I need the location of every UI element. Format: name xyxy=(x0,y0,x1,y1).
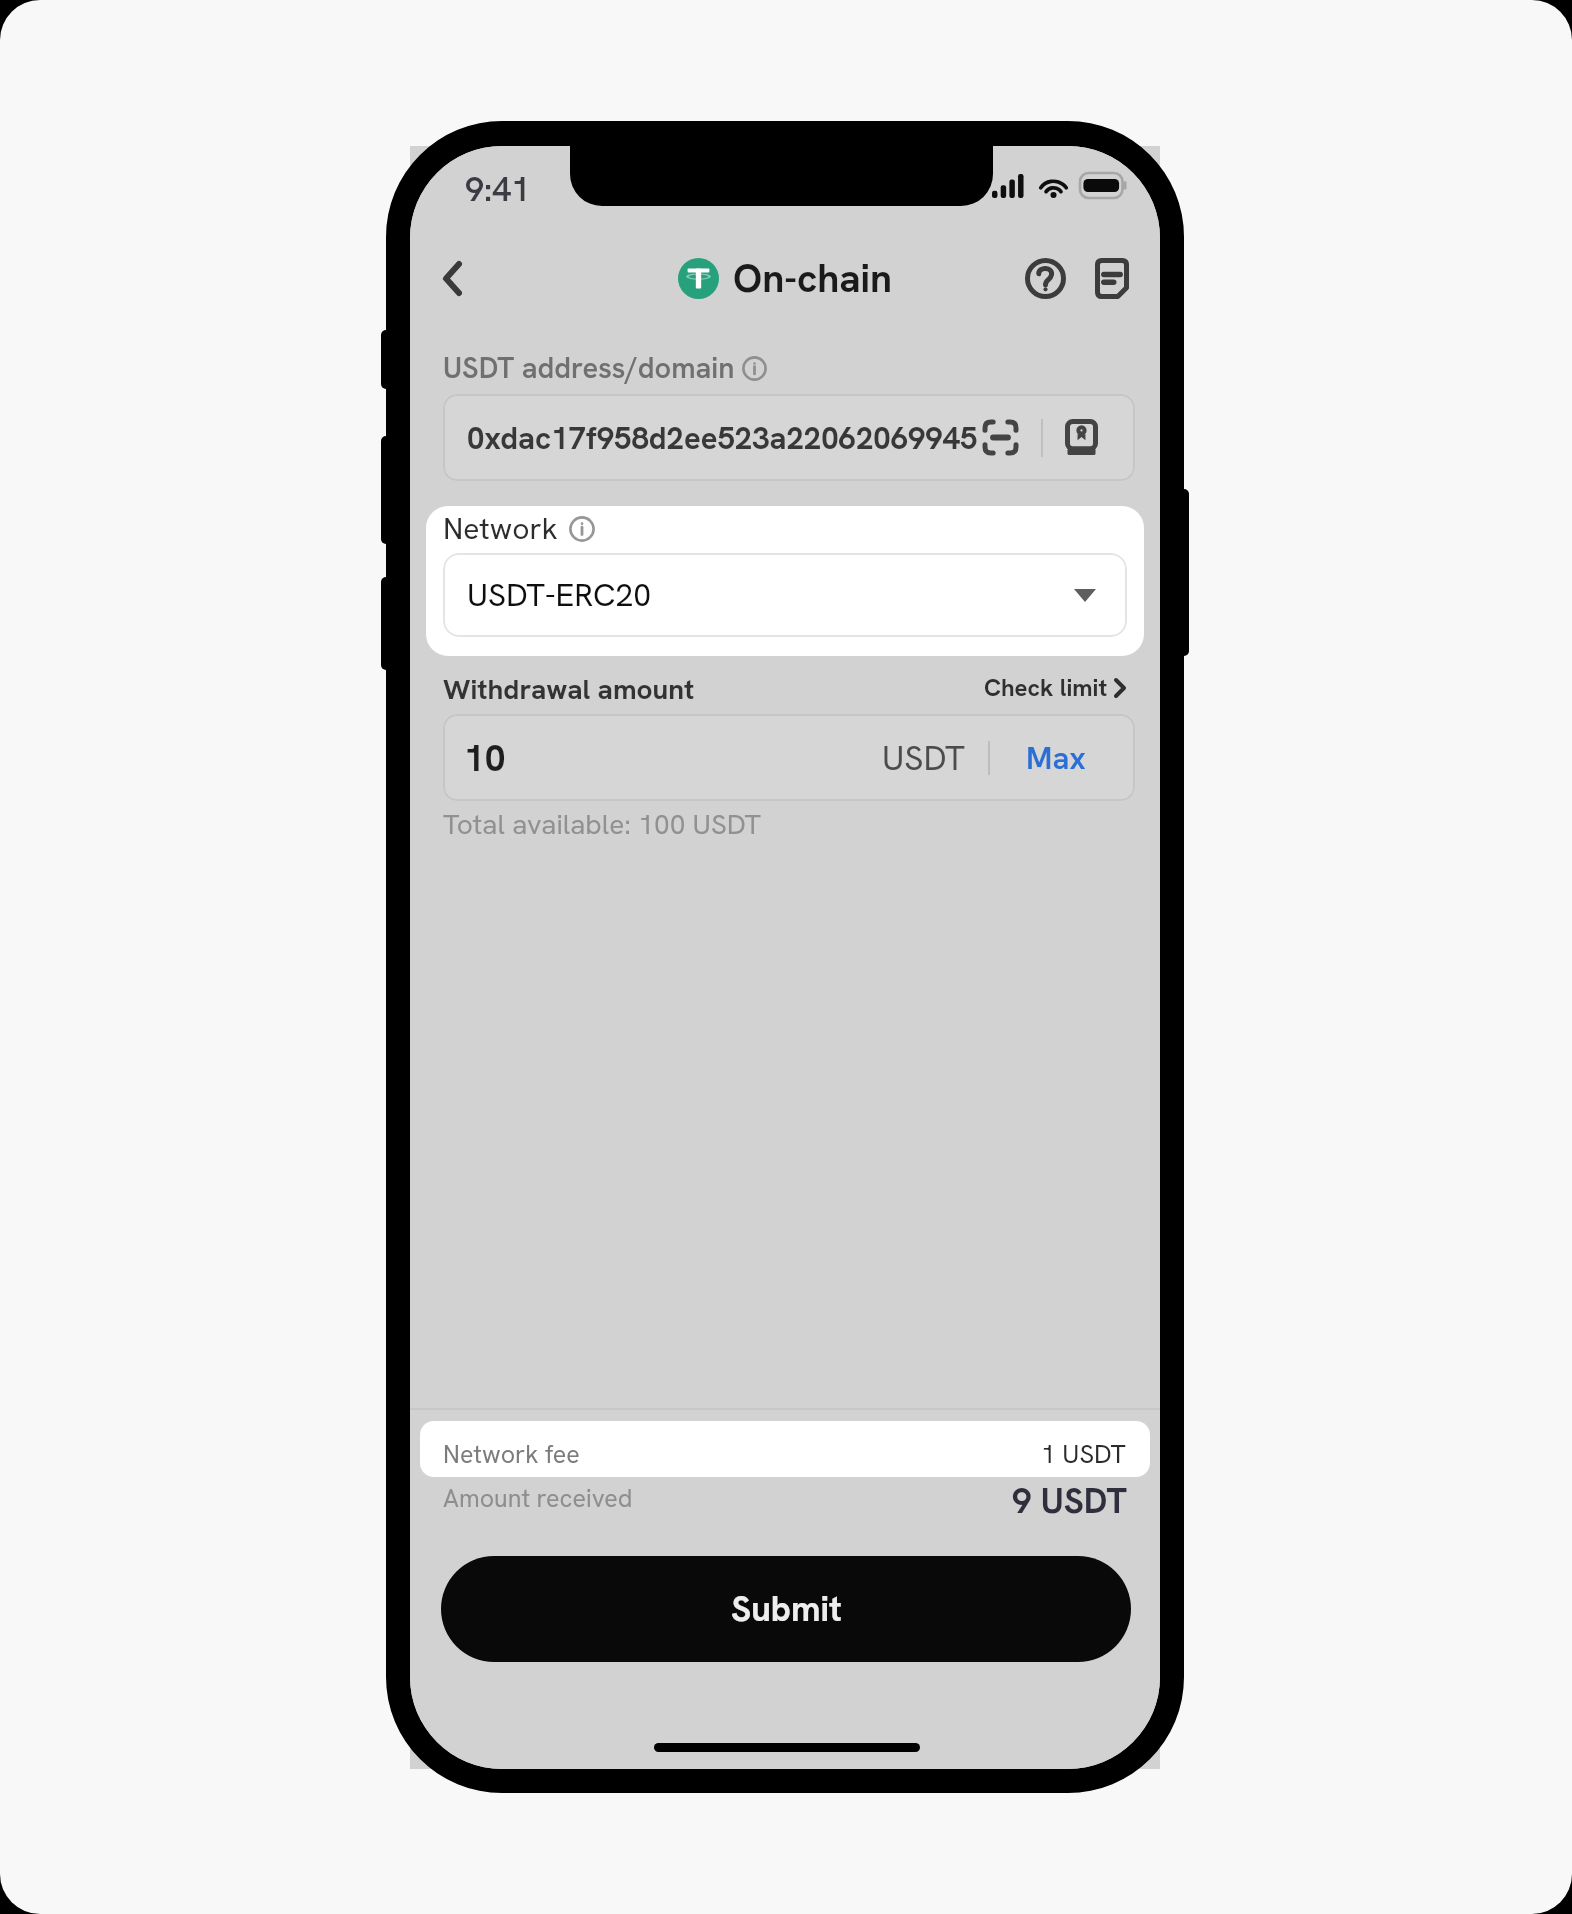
staticText: 9:41 xyxy=(465,167,531,211)
staticText: Max xyxy=(1026,738,1086,778)
button[interactable]: USDT-ERC20 xyxy=(443,553,1127,637)
staticText: Total available: 100 USDT xyxy=(443,806,761,842)
staticText: USDT-ERC20 xyxy=(467,574,652,616)
button[interactable]: Back xyxy=(420,246,484,310)
staticText: Check limit xyxy=(984,672,1108,703)
button[interactable]: Help xyxy=(1013,246,1077,310)
staticText: Submit xyxy=(731,1586,842,1632)
staticText: 10 xyxy=(464,734,506,782)
button[interactable]: Transaction records xyxy=(1080,246,1144,310)
staticText: Network xyxy=(443,509,558,548)
staticText: 0xdac17f958d2ee523a22062069945 xyxy=(467,418,978,458)
button[interactable]: Check limit xyxy=(984,672,1126,703)
button[interactable]: Submit xyxy=(441,1556,1131,1662)
staticText: On-chain xyxy=(733,253,893,304)
button[interactable]: 10 xyxy=(443,714,1135,801)
button[interactable]: Max xyxy=(1013,723,1099,793)
staticText: Amount received xyxy=(443,1482,633,1515)
button[interactable]: 0xdac17f958d2ee523a22062069945 xyxy=(443,394,1135,481)
staticText: USDT xyxy=(882,736,965,780)
staticText: Withdrawal amount xyxy=(443,671,695,707)
staticText: Network fee xyxy=(443,1438,580,1471)
staticText: 1 USDT xyxy=(1041,1437,1126,1471)
staticText: 9 USDT xyxy=(1012,1478,1127,1518)
button[interactable]: Scan QR code xyxy=(973,410,1028,465)
staticText: USDT address/domain xyxy=(443,349,735,387)
button[interactable]: Address book xyxy=(1057,410,1106,465)
